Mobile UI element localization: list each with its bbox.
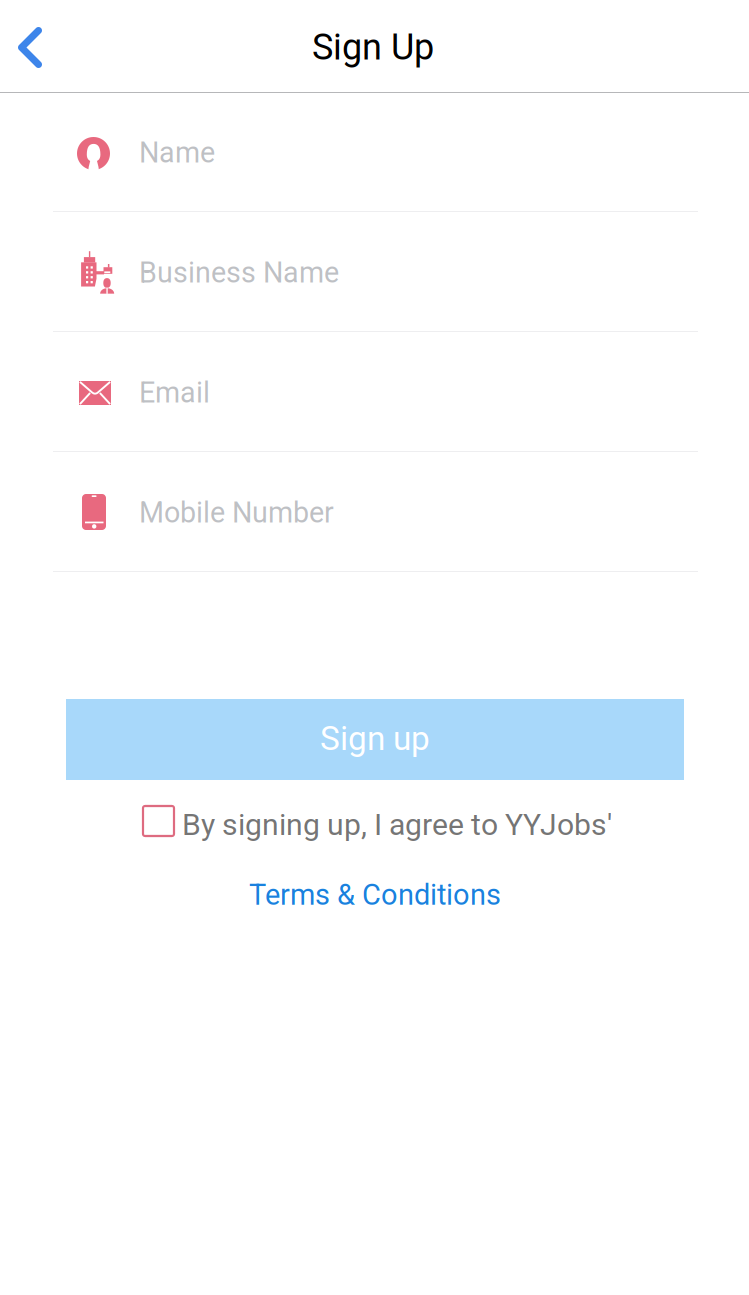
staticText: Sign up <box>320 719 430 758</box>
button[interactable]: Terms & Conditions <box>249 878 501 912</box>
staticText: Name <box>139 136 215 170</box>
staticText: By signing up, I agree to YYJobs' <box>182 807 612 842</box>
staticText: Email <box>139 376 210 410</box>
staticText: Terms & Conditions <box>249 878 501 912</box>
button[interactable]: Agree to terms <box>143 806 174 836</box>
button[interactable]: Email <box>0 333 749 453</box>
button[interactable]: Business Name <box>0 213 749 333</box>
button[interactable]: Name <box>0 93 749 213</box>
staticText: Sign Up <box>312 26 434 68</box>
button[interactable]: Back <box>0 0 62 92</box>
button[interactable]: Mobile Number <box>0 453 749 573</box>
staticText: Mobile Number <box>139 496 334 530</box>
staticText: Business Name <box>139 256 339 290</box>
button[interactable]: Sign up <box>66 699 684 780</box>
